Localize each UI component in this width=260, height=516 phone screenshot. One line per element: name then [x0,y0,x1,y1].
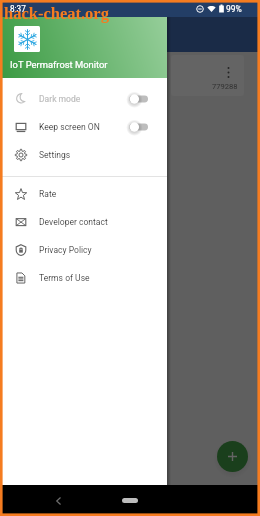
button[interactable]: More options [222,65,234,79]
staticText: Dark mode [39,94,81,104]
staticText: 99% [226,4,242,14]
staticText: IoT Permafrost Monitor [10,59,108,70]
staticText: Keep screen ON [39,122,100,132]
button[interactable]: Privacy Policy [0,236,167,264]
button[interactable]: Terms of Use [0,264,167,292]
staticText: Privacy Policy [39,245,92,255]
staticText: Settings [39,150,71,160]
staticText: Terms of Use [39,273,90,283]
staticText: 779288 [212,82,238,91]
button[interactable]: Developer contact [0,208,167,236]
button[interactable]: More options [171,55,244,96]
staticText: Rate [39,189,57,199]
button[interactable]: Rate [0,180,167,208]
staticText: 8:37 [10,4,26,14]
button[interactable]: Keep screen ON [0,113,167,141]
button[interactable]: Home [122,498,138,503]
staticText: hack-cheat.org [4,4,109,22]
button[interactable]: Back [47,485,69,516]
staticText: Developer contact [39,217,108,227]
button[interactable]: Add [217,441,248,472]
button[interactable]: Dark mode [0,85,167,113]
button[interactable]: Settings [0,141,167,169]
